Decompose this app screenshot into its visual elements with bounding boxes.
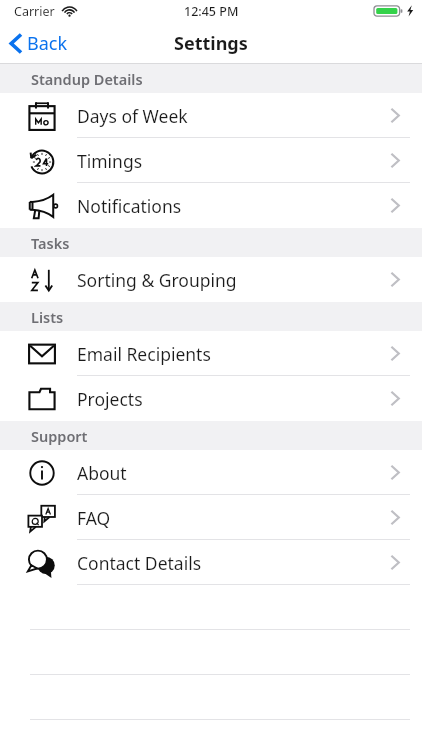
button[interactable]: Days of Week xyxy=(0,93,422,138)
other: FAQ xyxy=(25,501,59,535)
staticText: Standup Details xyxy=(31,69,143,89)
other: Timings xyxy=(25,144,59,178)
staticText: Carrier xyxy=(14,3,55,20)
staticText: Lists xyxy=(31,307,64,327)
button[interactable]: Email Recipients xyxy=(0,331,422,376)
button[interactable]: FAQ xyxy=(0,495,422,540)
staticText: Days of Week xyxy=(77,104,188,128)
staticText: Sorting & Grouping xyxy=(77,268,237,292)
button[interactable]: Contact Details xyxy=(0,540,422,585)
staticText: About xyxy=(77,461,127,485)
other: Days of Week xyxy=(25,99,59,133)
button[interactable]: Sorting and Grouping xyxy=(0,257,422,302)
staticText: Support xyxy=(31,426,88,446)
staticText: Email Recipients xyxy=(77,342,211,366)
other: Contact Details xyxy=(25,546,59,580)
button[interactable]: Notifications xyxy=(0,183,422,228)
staticText: FAQ xyxy=(77,506,111,530)
other: Projects xyxy=(25,382,59,416)
staticText: Tasks xyxy=(31,233,70,253)
staticText: Settings xyxy=(174,31,248,56)
other: About xyxy=(25,456,59,490)
staticText: Timings xyxy=(77,149,143,173)
staticText: 12:45 PM xyxy=(184,3,239,20)
staticText: Notifications xyxy=(77,194,182,218)
staticText: Back xyxy=(27,31,68,56)
button[interactable]: Timings xyxy=(0,138,422,183)
staticText: Contact Details xyxy=(77,551,202,575)
button[interactable]: Projects xyxy=(0,376,422,421)
other: Wi-Fi signal xyxy=(62,4,77,19)
other: Sorting and Grouping xyxy=(25,263,59,297)
other: Battery charging xyxy=(374,4,414,18)
other: Notifications xyxy=(25,189,59,223)
button[interactable]: Back xyxy=(0,27,80,60)
button[interactable]: About xyxy=(0,450,422,495)
other: Email Recipients xyxy=(25,337,59,371)
staticText: Projects xyxy=(77,387,143,411)
